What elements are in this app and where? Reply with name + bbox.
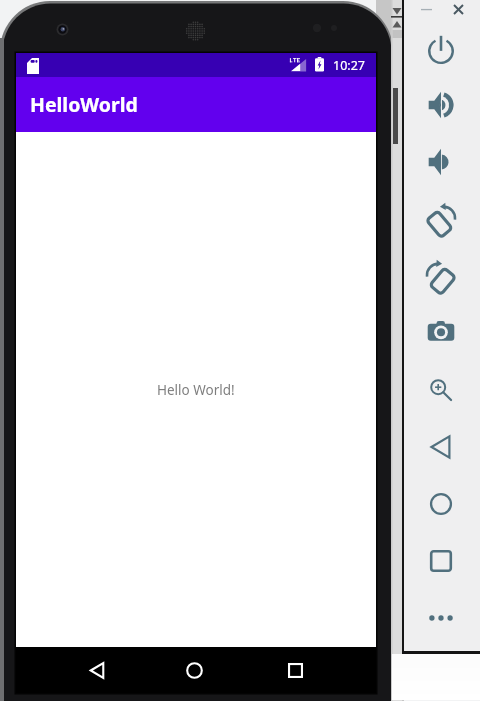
button[interactable]: More [421,598,461,638]
button[interactable]: Home [171,647,217,693]
button[interactable]: Volume down [421,142,461,182]
button[interactable]: Power [421,29,461,69]
button[interactable]: Overview [272,647,318,693]
button[interactable]: Close [445,0,471,22]
staticText: 10:27 [333,57,365,74]
button[interactable]: Rotate left [421,202,461,242]
button[interactable]: Back [421,427,461,467]
button[interactable]: Back [74,647,120,693]
button[interactable]: Rotate right [421,259,461,299]
button[interactable]: Minimize [413,0,439,22]
staticText: HelloWorld [30,91,138,118]
button[interactable]: Screenshot [421,312,461,352]
button[interactable]: Volume up [421,85,461,125]
button[interactable]: Home [421,484,461,524]
button[interactable]: Overview [421,541,461,581]
button[interactable]: Zoom [421,370,461,410]
staticText: Hello World! [157,381,235,399]
